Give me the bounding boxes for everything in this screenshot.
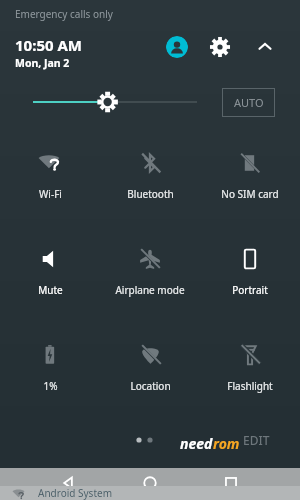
- button[interactable]: Bluetooth: [100, 136, 200, 232]
- button[interactable]: Brightness: [25, 88, 205, 116]
- staticText: rom: [213, 434, 240, 453]
- staticText: No SIM card: [221, 187, 279, 201]
- button[interactable]: 1%: [0, 328, 100, 424]
- staticText: Wi-Fi: [39, 187, 62, 201]
- button[interactable]: EDIT: [243, 432, 270, 448]
- button[interactable]: Recent apps: [219, 471, 243, 495]
- staticText: Flashlight: [227, 379, 273, 393]
- button[interactable]: Back: [57, 471, 81, 495]
- staticText: Mute: [38, 283, 63, 297]
- staticText: Mon, Jan 2: [15, 56, 70, 70]
- staticText: AUTO: [234, 95, 264, 110]
- staticText: Airplane mode: [115, 283, 185, 297]
- button[interactable]: Airplane mode: [100, 232, 200, 328]
- button[interactable]: Location: [100, 328, 200, 424]
- staticText: Android System: [38, 486, 113, 500]
- button[interactable]: Portrait: [200, 232, 300, 328]
- staticText: Portrait: [232, 283, 268, 297]
- button[interactable]: Home: [138, 471, 162, 495]
- staticText: 10:50 AM: [15, 35, 82, 55]
- staticText: Location: [130, 379, 171, 393]
- button[interactable]: Flashlight: [200, 328, 300, 424]
- button[interactable]: User profile: [166, 36, 188, 58]
- button[interactable]: AUTO: [222, 88, 275, 117]
- staticText: need: [180, 434, 213, 453]
- button[interactable]: Android System: [0, 486, 300, 500]
- staticText: Bluetooth: [127, 187, 174, 201]
- staticText: Emergency calls only: [15, 7, 113, 21]
- staticText: 1%: [43, 379, 58, 393]
- button[interactable]: Wi-Fi: [0, 136, 100, 232]
- button[interactable]: Mute: [0, 232, 100, 328]
- button[interactable]: No SIM card: [200, 136, 300, 232]
- button[interactable]: Settings: [209, 36, 231, 58]
- button[interactable]: Collapse: [254, 36, 276, 58]
